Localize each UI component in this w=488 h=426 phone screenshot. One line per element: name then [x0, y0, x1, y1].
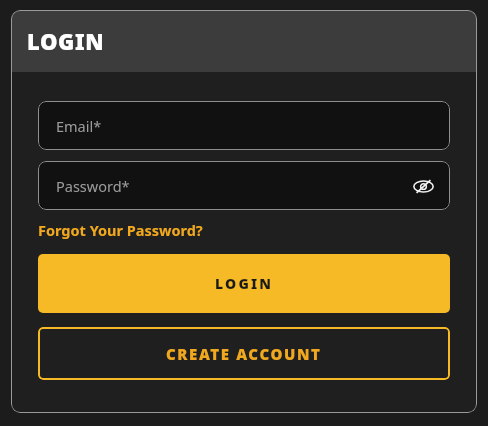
staticText: Password* [56, 176, 130, 196]
button[interactable]: Email* [38, 101, 450, 150]
staticText: LOGIN [27, 26, 105, 56]
staticText: CREATE ACCOUNT [166, 344, 322, 364]
staticText: Forgot Your Password? [38, 220, 203, 240]
button[interactable]: LOGIN [38, 254, 450, 313]
button[interactable]: Show password [408, 171, 438, 201]
button[interactable]: Password* [38, 161, 450, 210]
button[interactable]: Forgot Your Password? [38, 218, 203, 242]
staticText: LOGIN [215, 274, 274, 293]
staticText: Email* [56, 116, 102, 136]
button[interactable]: CREATE ACCOUNT [38, 327, 450, 380]
